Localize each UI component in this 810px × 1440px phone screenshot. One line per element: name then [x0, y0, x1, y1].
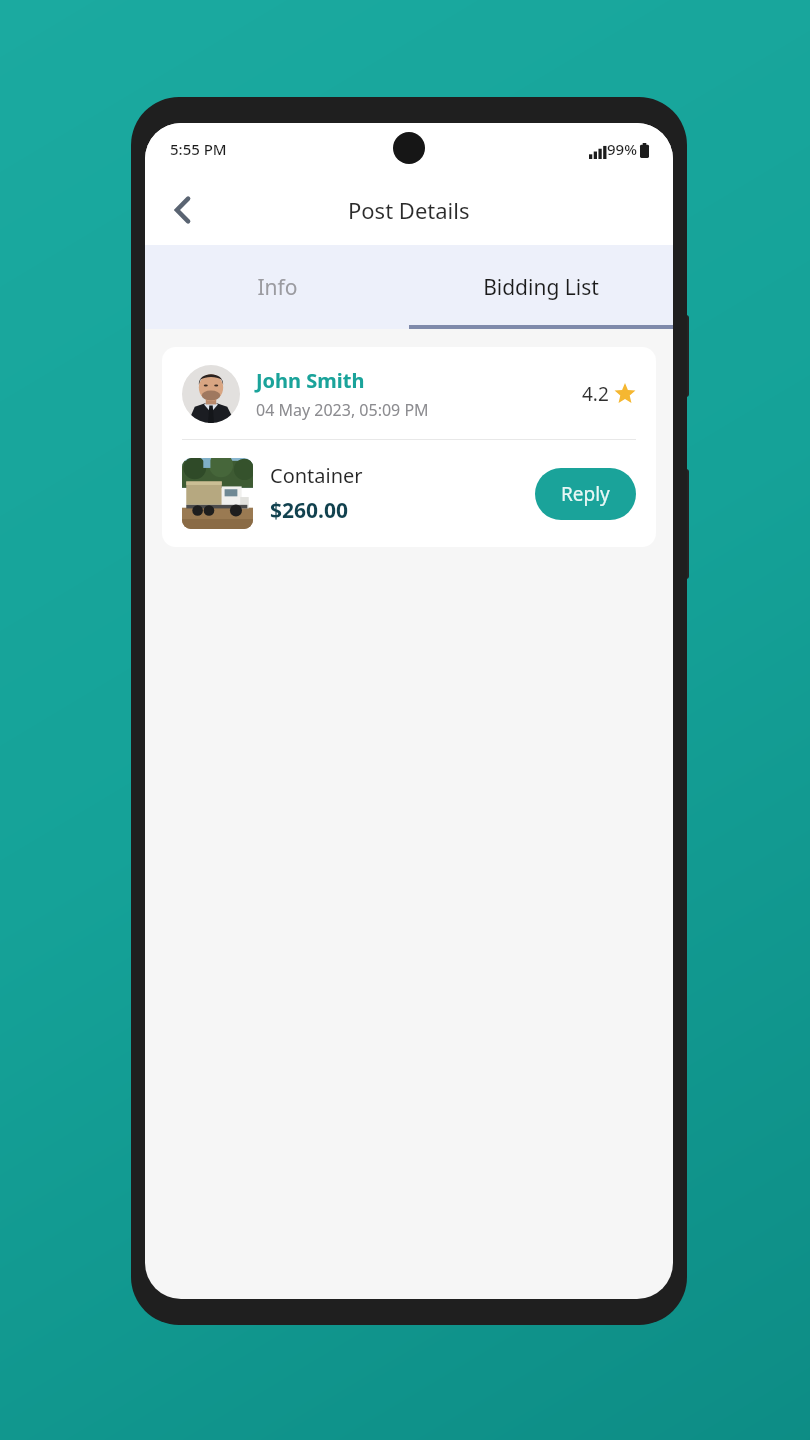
button[interactable]: Back — [161, 188, 205, 232]
staticText: John Smith — [256, 367, 365, 394]
staticText: Post Details — [348, 195, 470, 225]
button[interactable]: Reply — [535, 468, 636, 520]
staticText: Bidding List — [483, 273, 599, 302]
button[interactable]: Info — [145, 245, 409, 329]
staticText: 4.2 — [582, 381, 609, 407]
staticText: 5:55 PM — [170, 139, 227, 159]
staticText: Container — [270, 462, 363, 489]
button[interactable]: Bidding List — [409, 245, 673, 329]
staticText: $260.00 — [270, 496, 348, 525]
staticText: 04 May 2023, 05:09 PM — [256, 399, 429, 421]
staticText: Info — [257, 273, 298, 302]
staticText: 99% — [607, 139, 637, 159]
staticText: Reply — [561, 481, 610, 507]
button[interactable]: John Smith — [162, 347, 656, 547]
